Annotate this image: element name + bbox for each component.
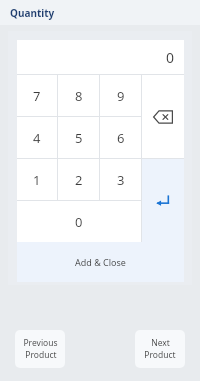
button[interactable]: 8 <box>58 75 99 116</box>
staticText: Add & Close <box>75 256 126 268</box>
button[interactable]: Backspace <box>142 75 184 158</box>
button[interactable]: 5 <box>58 117 99 158</box>
button[interactable]: Add & Close <box>17 242 184 282</box>
staticText: Product <box>25 349 57 361</box>
staticText: 0 <box>166 48 175 67</box>
staticText: Quantity <box>10 6 55 20</box>
button[interactable]: Enter <box>142 159 184 242</box>
staticText: 9 <box>117 87 125 105</box>
staticText: 3 <box>117 171 125 189</box>
staticText: 1 <box>33 171 41 189</box>
staticText: Product <box>144 349 176 361</box>
button[interactable]: 2 <box>58 159 99 200</box>
staticText: 7 <box>33 87 41 105</box>
staticText: Previous <box>23 337 58 349</box>
button[interactable]: 0 <box>17 201 141 242</box>
button[interactable]: Previous <box>15 330 65 368</box>
staticText: 0 <box>75 213 83 231</box>
staticText: 4 <box>33 129 41 147</box>
button[interactable]: Next <box>135 330 185 368</box>
staticText: 8 <box>75 87 83 105</box>
staticText: Next <box>151 337 170 349</box>
button[interactable]: 6 <box>100 117 141 158</box>
button[interactable]: 4 <box>17 117 57 158</box>
staticText: 2 <box>75 171 83 189</box>
staticText: 6 <box>117 129 125 147</box>
button[interactable]: 3 <box>100 159 141 200</box>
button[interactable]: 1 <box>17 159 57 200</box>
staticText: 5 <box>75 129 83 147</box>
button[interactable]: 9 <box>100 75 141 116</box>
button[interactable]: 7 <box>17 75 57 116</box>
